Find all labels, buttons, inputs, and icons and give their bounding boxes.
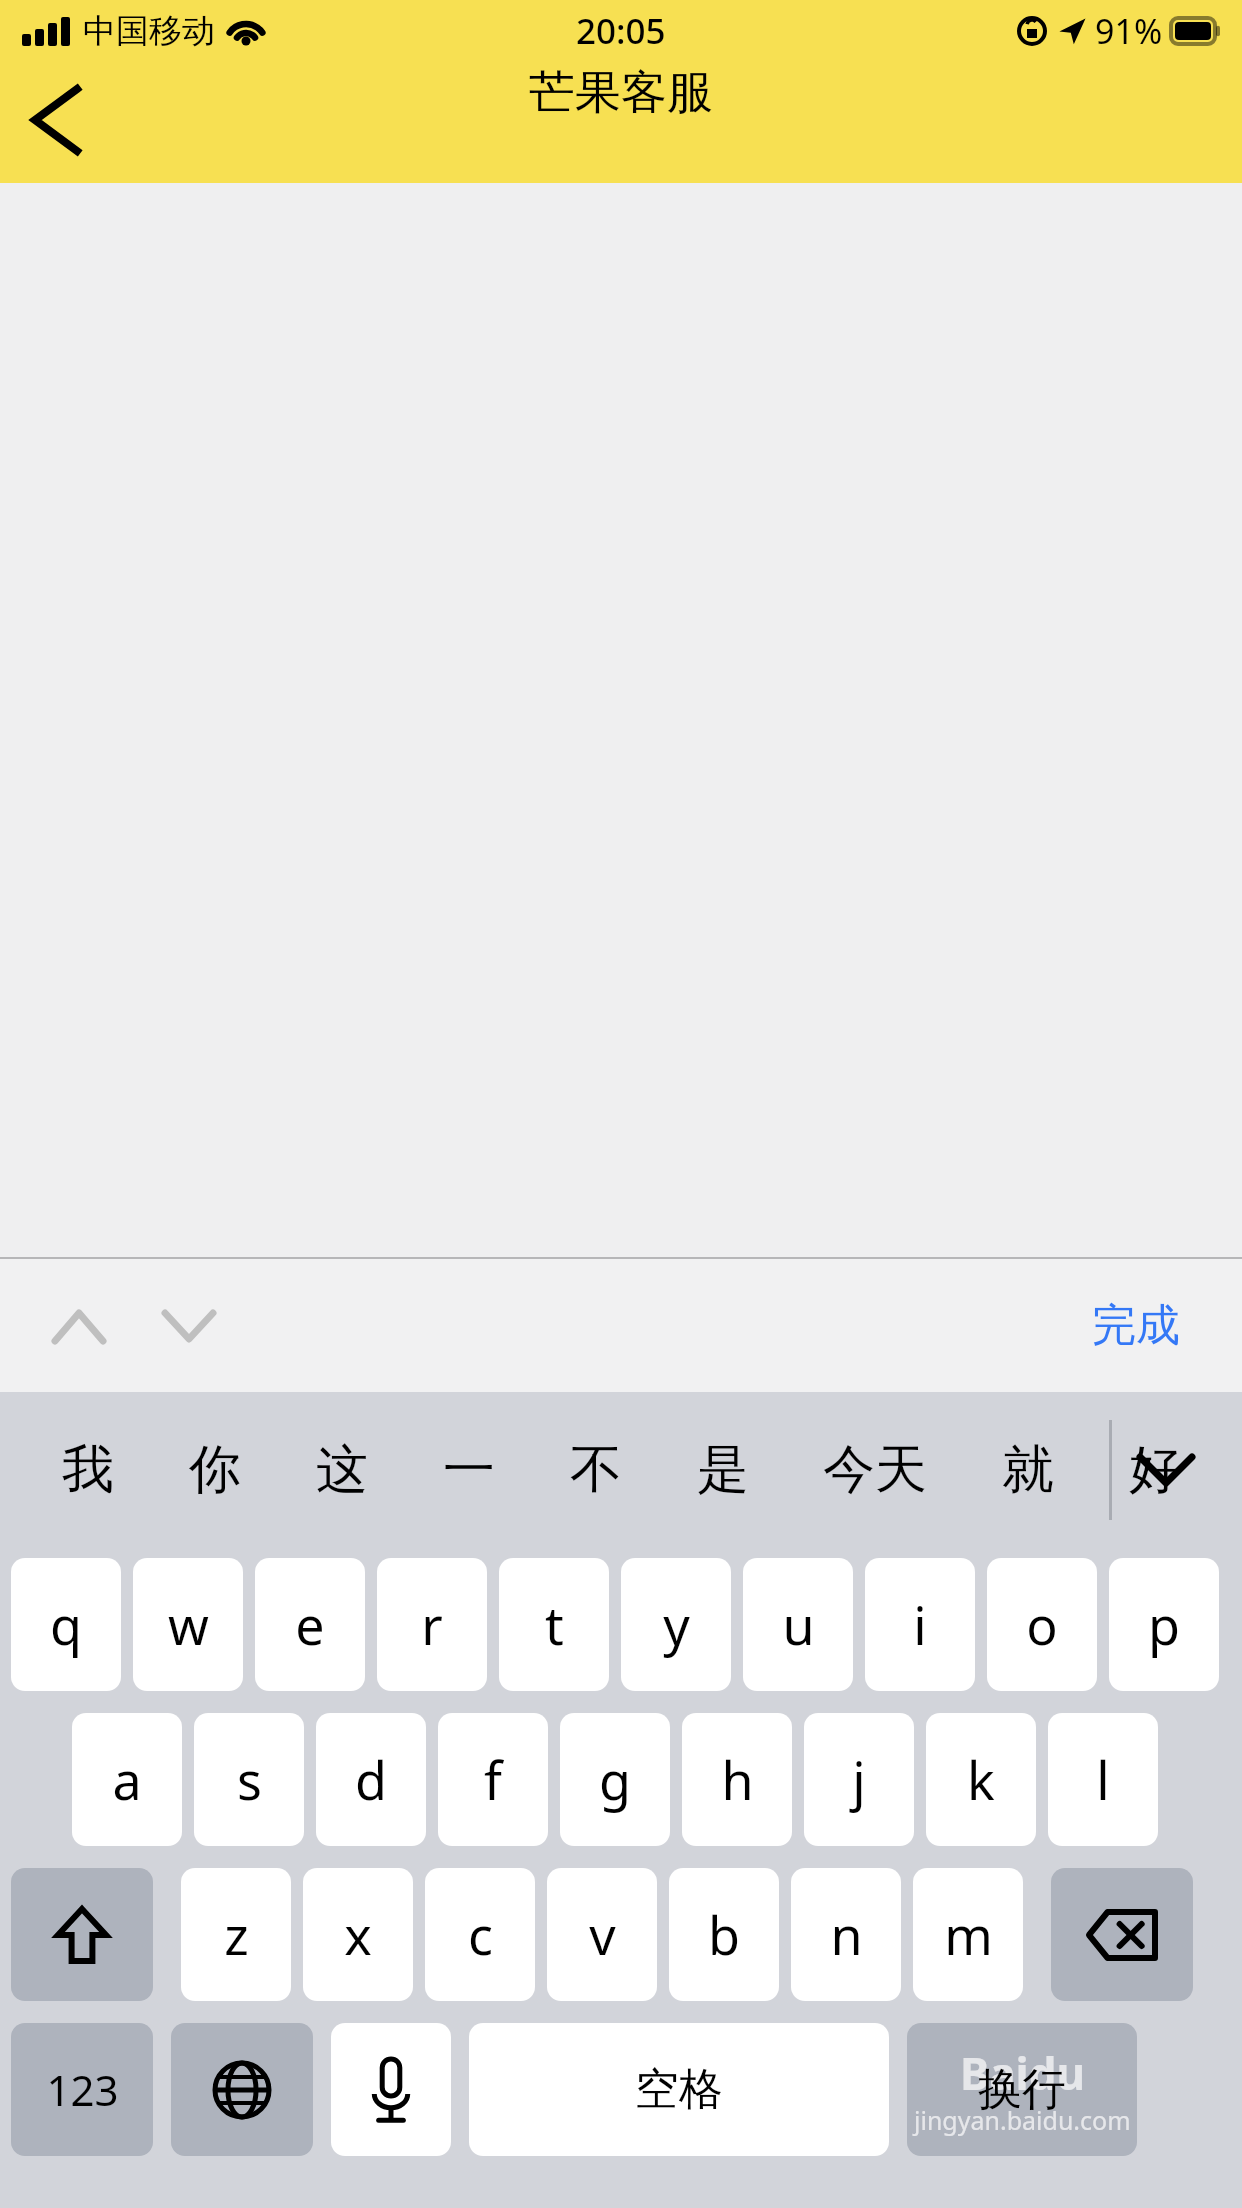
staticText: 完成: [1092, 1298, 1180, 1353]
staticText: 我: [62, 1437, 114, 1503]
button[interactable]: v: [547, 1868, 657, 2001]
button[interactable]: m: [913, 1868, 1023, 2001]
button[interactable]: Previous field: [36, 1276, 122, 1376]
staticText: f: [484, 1744, 502, 1815]
staticText: 123: [46, 2061, 119, 2118]
button[interactable]: Delete: [1051, 1868, 1193, 2001]
button[interactable]: 你: [151, 1410, 278, 1530]
button[interactable]: g: [560, 1713, 670, 1846]
button[interactable]: Shift: [11, 1868, 153, 2001]
staticText: i: [913, 1589, 927, 1660]
button[interactable]: More candidates: [1118, 1415, 1214, 1525]
staticText: 不: [570, 1437, 622, 1503]
button[interactable]: w: [133, 1558, 243, 1691]
staticText: 你: [189, 1437, 241, 1503]
button[interactable]: n: [791, 1868, 901, 2001]
button[interactable]: 123: [11, 2023, 153, 2156]
button[interactable]: z: [181, 1868, 291, 2001]
button[interactable]: 就: [964, 1410, 1091, 1530]
button[interactable]: 一: [405, 1410, 532, 1530]
staticText: h: [721, 1744, 754, 1815]
staticText: s: [237, 1744, 262, 1815]
staticText: 好: [1129, 1437, 1181, 1503]
button[interactable]: i: [865, 1558, 975, 1691]
button[interactable]: c: [425, 1868, 535, 2001]
staticText: m: [944, 1899, 993, 1970]
staticText: r: [421, 1589, 443, 1660]
button[interactable]: f: [438, 1713, 548, 1846]
staticText: q: [50, 1589, 82, 1660]
staticText: v: [589, 1899, 616, 1970]
button[interactable]: t: [499, 1558, 609, 1691]
button[interactable]: 空格: [469, 2023, 889, 2156]
button[interactable]: y: [621, 1558, 731, 1691]
staticText: p: [1148, 1589, 1180, 1660]
button[interactable]: h: [682, 1713, 792, 1846]
button[interactable]: r: [377, 1558, 487, 1691]
staticText: 91%: [1095, 8, 1163, 54]
staticText: t: [545, 1589, 564, 1660]
button[interactable]: o: [987, 1558, 1097, 1691]
staticText: 芒果客服: [529, 64, 713, 122]
button[interactable]: 今天: [786, 1410, 964, 1530]
button[interactable]: p: [1109, 1558, 1219, 1691]
staticText: d: [355, 1744, 387, 1815]
staticText: 中国移动: [83, 10, 215, 52]
staticText: jingyan.baidu.com: [914, 2103, 1131, 2137]
staticText: e: [295, 1589, 325, 1660]
staticText: g: [599, 1744, 631, 1815]
staticText: 是: [697, 1437, 749, 1503]
staticText: u: [782, 1589, 815, 1660]
button[interactable]: q: [11, 1558, 121, 1691]
button[interactable]: e: [255, 1558, 365, 1691]
staticText: 20:05: [576, 7, 666, 55]
button[interactable]: j: [804, 1713, 914, 1846]
button[interactable]: Voice input: [331, 2023, 451, 2156]
staticText: j: [852, 1744, 866, 1815]
button[interactable]: l: [1048, 1713, 1158, 1846]
staticText: 这: [316, 1437, 368, 1503]
staticText: n: [830, 1899, 863, 1970]
button[interactable]: Baidu: [907, 2023, 1137, 2156]
staticText: l: [1096, 1744, 1110, 1815]
staticText: x: [344, 1899, 372, 1970]
button[interactable]: 我: [24, 1410, 151, 1530]
button[interactable]: 好: [1091, 1410, 1218, 1530]
button[interactable]: s: [194, 1713, 304, 1846]
button[interactable]: x: [303, 1868, 413, 2001]
button[interactable]: Switch language: [171, 2023, 313, 2156]
staticText: w: [168, 1589, 209, 1660]
staticText: a: [112, 1744, 142, 1815]
button[interactable]: 不: [532, 1410, 659, 1530]
button[interactable]: k: [926, 1713, 1036, 1846]
staticText: 空格: [635, 2062, 723, 2117]
button[interactable]: 这: [278, 1410, 405, 1530]
button[interactable]: 完成: [1080, 1284, 1192, 1367]
staticText: 一: [443, 1437, 495, 1503]
button[interactable]: b: [669, 1868, 779, 2001]
staticText: Baidu: [960, 2043, 1086, 2103]
staticText: c: [468, 1899, 493, 1970]
button[interactable]: Back: [0, 62, 110, 178]
button[interactable]: u: [743, 1558, 853, 1691]
staticText: b: [708, 1899, 740, 1970]
staticText: o: [1026, 1589, 1058, 1660]
button[interactable]: Next field: [146, 1276, 232, 1376]
staticText: y: [663, 1589, 690, 1660]
staticText: 今天: [823, 1437, 927, 1503]
button[interactable]: 是: [659, 1410, 786, 1530]
staticText: z: [224, 1899, 249, 1970]
button[interactable]: a: [72, 1713, 182, 1846]
staticText: k: [967, 1744, 995, 1815]
staticText: 换行: [978, 2062, 1066, 2117]
staticText: 就: [1002, 1437, 1054, 1503]
button[interactable]: d: [316, 1713, 426, 1846]
